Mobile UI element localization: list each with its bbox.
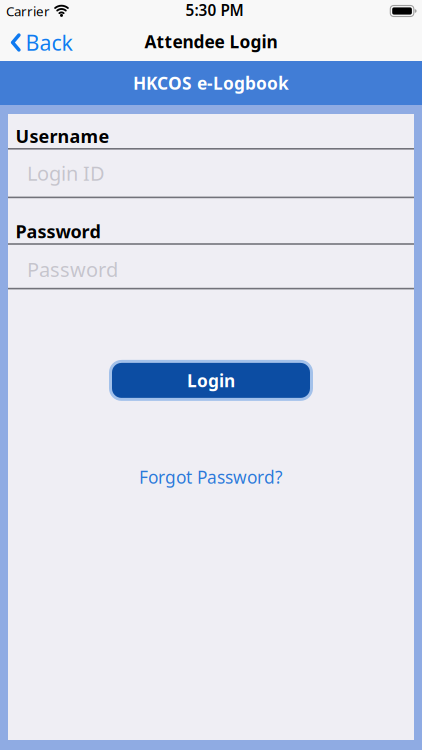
staticText: Username (15, 124, 109, 148)
staticText: Login ID (27, 160, 105, 186)
button[interactable]: Password (8, 245, 414, 288)
staticText: HKCOS e-Logbook (133, 71, 289, 94)
button[interactable]: Login (110, 361, 311, 399)
staticText: Password (27, 256, 118, 283)
staticText: Login (187, 369, 235, 392)
staticText: Forgot Password? (139, 465, 283, 488)
button[interactable]: Login ID (8, 150, 414, 197)
staticText: Back (25, 28, 72, 57)
staticText: 5:30 PM (185, 0, 243, 20)
staticText: Carrier (6, 2, 50, 20)
staticText: Password (15, 219, 100, 243)
button[interactable]: Forgot Password? (139, 465, 283, 488)
button[interactable]: Back (0, 27, 72, 56)
staticText: Attendee Login (144, 30, 277, 53)
